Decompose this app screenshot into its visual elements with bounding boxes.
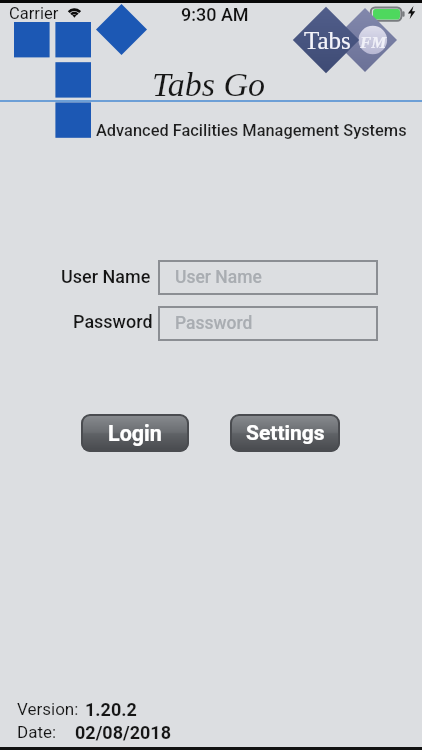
other: Wi-Fi signal: [65, 6, 85, 18]
other: Battery full: [366, 4, 406, 22]
staticText: Password: [175, 313, 253, 334]
staticText: Login: [108, 421, 162, 446]
staticText: 1.20.2: [85, 699, 137, 720]
staticText: 9:30 AM: [181, 4, 249, 25]
staticText: Version:: [17, 699, 79, 719]
staticText: Tabs: [304, 27, 351, 55]
staticText: Advanced Facilities Management Systems: [96, 121, 407, 140]
button[interactable]: Password: [158, 306, 378, 341]
staticText: User Name: [61, 266, 151, 287]
staticText: Carrier: [9, 4, 59, 23]
button[interactable]: User Name: [158, 260, 378, 295]
other: Charging: [407, 6, 416, 19]
staticText: User Name: [175, 267, 262, 288]
staticText: Password: [73, 311, 153, 332]
staticText: FM: [360, 33, 387, 52]
staticText: Settings: [246, 421, 325, 446]
button[interactable]: Settings: [230, 414, 340, 452]
button[interactable]: Login: [81, 414, 189, 452]
staticText: Tabs Go: [152, 66, 266, 104]
staticText: 02/08/2018: [75, 722, 171, 743]
staticText: Date:: [17, 722, 57, 742]
